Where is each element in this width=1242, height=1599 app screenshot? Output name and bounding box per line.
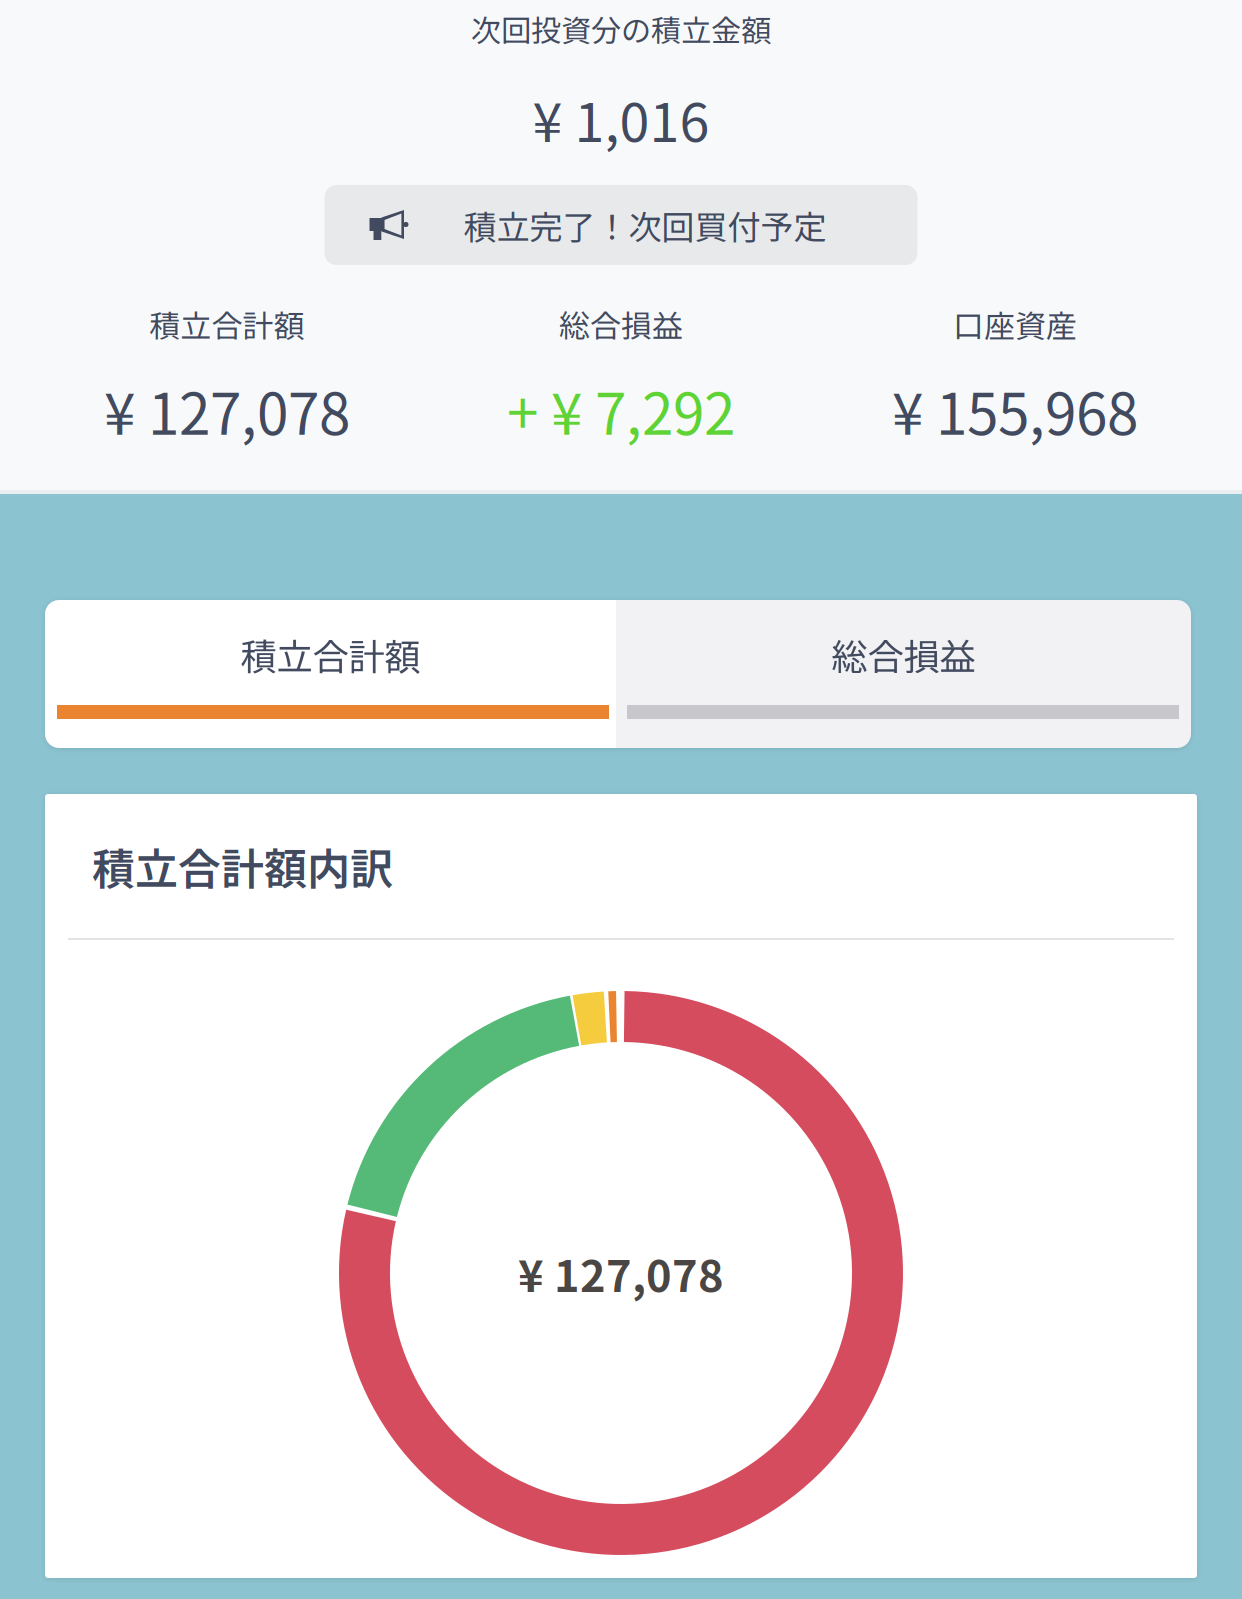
staticText: 総合損益 [831, 628, 975, 681]
button[interactable]: 総合損益 [616, 600, 1191, 748]
button[interactable]: 積立合計額 [45, 600, 616, 748]
button[interactable]: 積立完了！次回買付予定 [324, 185, 917, 265]
staticText: ¥ 127,078 [104, 369, 350, 451]
staticText: 口座資産 [953, 302, 1077, 346]
staticText: ¥ 127,078 [518, 1242, 724, 1304]
staticText: ¥ 155,968 [892, 369, 1138, 451]
staticText: 総合損益 [559, 302, 683, 346]
staticText: + ¥ 7,292 [507, 369, 735, 451]
staticText: 積立合計額 [240, 628, 420, 681]
staticText: ¥ 1,016 [532, 80, 709, 157]
staticText: 次回投資分の積立金額 [471, 7, 771, 50]
staticText: 積立合計額内訳 [92, 835, 393, 897]
staticText: 積立合計額 [149, 302, 304, 346]
staticText: 積立完了！次回買付予定 [463, 201, 826, 249]
